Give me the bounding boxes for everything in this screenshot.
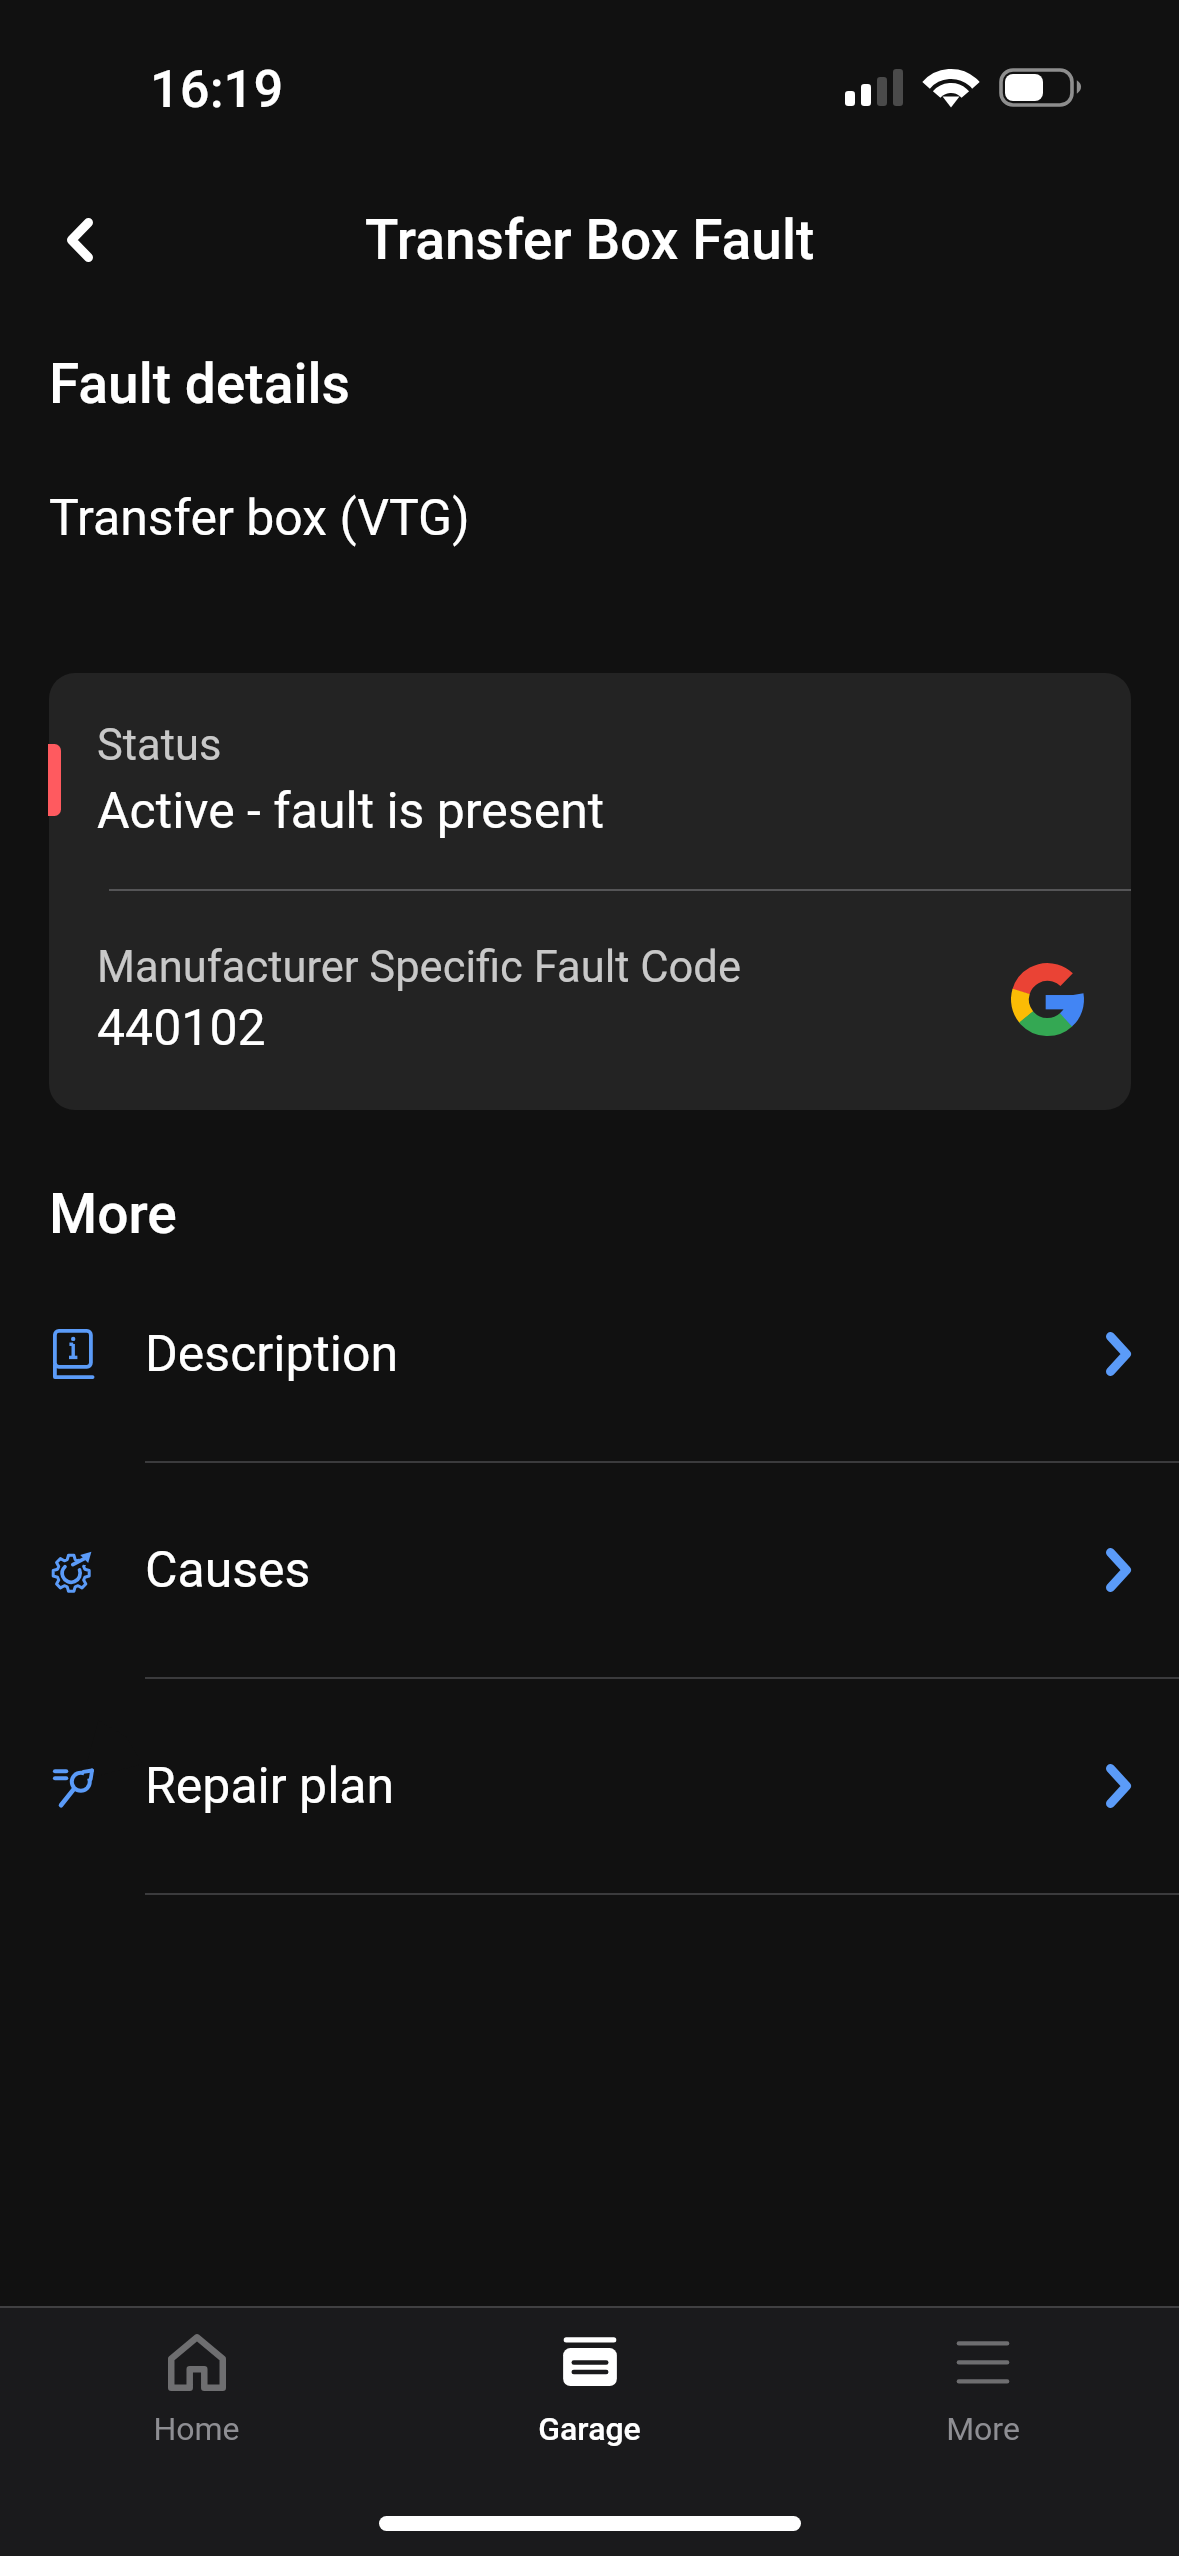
- button[interactable]: More: [786, 2306, 1179, 2448]
- button[interactable]: Back: [25, 185, 135, 295]
- staticText: Transfer box (VTG): [49, 489, 470, 548]
- staticText: Description: [145, 1325, 399, 1384]
- staticText: Manufacturer Specific Fault Code: [97, 942, 741, 993]
- button[interactable]: Garage: [393, 2306, 786, 2448]
- staticText: Transfer Box Fault: [365, 208, 815, 272]
- button[interactable]: Home: [0, 2306, 393, 2448]
- staticText: Repair plan: [145, 1757, 395, 1816]
- staticText: Status: [97, 720, 222, 771]
- staticText: Fault details: [49, 352, 350, 416]
- button[interactable]: Causes: [0, 1463, 1179, 1677]
- button[interactable]: Description: [0, 1247, 1179, 1461]
- staticText: 16:19: [150, 58, 284, 120]
- staticText: More: [946, 2410, 1020, 2448]
- staticText: More: [49, 1182, 177, 1246]
- staticText: Home: [153, 2410, 240, 2448]
- staticText: Causes: [145, 1541, 311, 1600]
- staticText: 440102: [97, 999, 266, 1058]
- staticText: Garage: [538, 2410, 641, 2448]
- button[interactable]: Repair plan: [0, 1679, 1179, 1893]
- staticText: Active - fault is present: [97, 782, 605, 841]
